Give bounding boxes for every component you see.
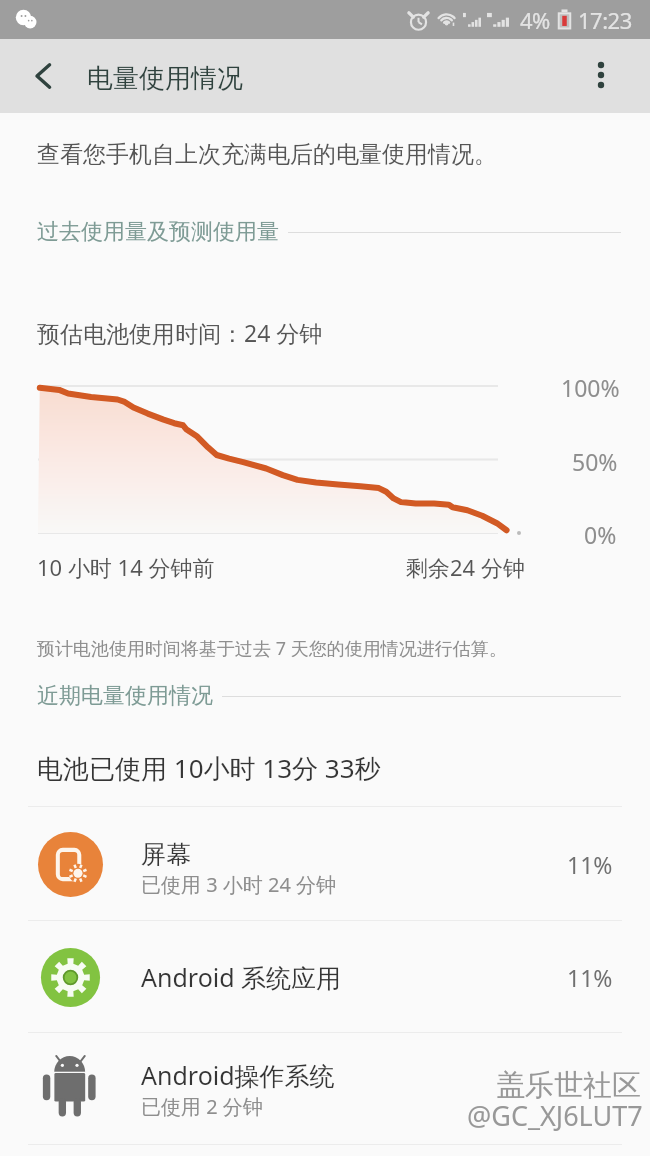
staticText: 预计电池使用时间将基于过去 7 天您的使用情况进行估算。 bbox=[37, 636, 507, 661]
staticText: 电量使用情况 bbox=[87, 62, 243, 95]
staticText: 100% bbox=[561, 372, 620, 403]
staticText: 11% bbox=[567, 962, 613, 993]
staticText: 预估电池使用时间：24 分钟 bbox=[37, 317, 323, 348]
staticText: 过去使用量及预测使用量 bbox=[37, 218, 279, 246]
staticText: 盖乐世社区 bbox=[496, 1067, 641, 1104]
staticText: 已使用 3 小时 24 分钟 bbox=[141, 871, 337, 898]
staticText: 电池已使用 10小时 13分 33秒 bbox=[37, 750, 381, 786]
staticText: 0% bbox=[584, 519, 617, 550]
button[interactable]: Android 系统应用 bbox=[0, 921, 650, 1033]
staticText: 4% bbox=[520, 5, 550, 35]
button[interactable]: 屏幕 bbox=[0, 807, 650, 921]
staticText: 剩余24 分钟 bbox=[406, 552, 525, 582]
button[interactable]: Back bbox=[16, 48, 72, 104]
staticText: 屏幕 bbox=[141, 839, 191, 870]
staticText: 近期电量使用情况 bbox=[37, 682, 213, 710]
staticText: Android操作系统 bbox=[141, 1058, 335, 1092]
staticText: Android 系统应用 bbox=[141, 960, 342, 994]
staticText: 11% bbox=[567, 849, 613, 880]
staticText: 10 小时 14 分钟前 bbox=[37, 552, 215, 582]
button[interactable]: More options bbox=[573, 47, 629, 103]
staticText: @GC_XJ6LUT7 bbox=[467, 1097, 643, 1134]
staticText: 查看您手机自上次充满电后的电量使用情况。 bbox=[37, 140, 497, 169]
staticText: 已使用 2 分钟 bbox=[141, 1093, 263, 1120]
staticText: 17:23 bbox=[578, 5, 632, 35]
staticText: 50% bbox=[572, 446, 618, 477]
button[interactable]: Android操作系统 bbox=[0, 1033, 650, 1145]
